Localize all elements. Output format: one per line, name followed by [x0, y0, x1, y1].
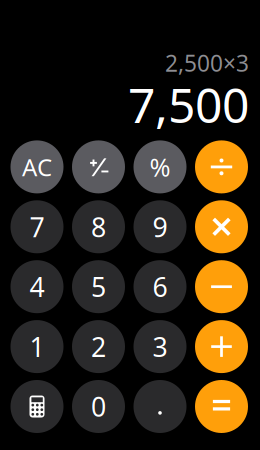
staticText: 5 — [91, 269, 106, 304]
staticText: 4 — [29, 269, 44, 304]
button[interactable]: Plus — [195, 320, 248, 373]
button[interactable]: Minus — [195, 260, 248, 313]
staticText: 8 — [91, 209, 106, 244]
button[interactable]: 3 — [133, 320, 186, 373]
button[interactable]: 1 — [10, 320, 63, 373]
button[interactable]: 8 — [72, 200, 125, 253]
staticText: 9 — [152, 209, 167, 244]
button[interactable]: 6 — [133, 260, 186, 313]
staticText: 7,500 — [128, 73, 249, 136]
staticText: 2,500×3 — [165, 48, 249, 78]
button[interactable]: % — [133, 140, 186, 193]
staticText: 0 — [91, 389, 106, 424]
staticText: 3 — [152, 329, 167, 364]
button[interactable]: 7 — [10, 200, 63, 253]
button[interactable]: Multiply — [195, 200, 248, 253]
staticText: AC — [22, 151, 52, 183]
button[interactable]: Divide — [195, 140, 248, 193]
button[interactable]: 0 — [72, 380, 125, 433]
button[interactable]: 5 — [72, 260, 125, 313]
staticText: 2 — [91, 329, 106, 364]
staticText: 1 — [29, 329, 44, 364]
button[interactable]: Decimal point — [133, 380, 186, 433]
button[interactable]: AC — [10, 140, 63, 193]
staticText: 7 — [29, 209, 44, 244]
button[interactable]: 4 — [10, 260, 63, 313]
staticText: 6 — [152, 269, 167, 304]
button[interactable]: Plus minus — [72, 140, 125, 193]
button[interactable]: 2 — [72, 320, 125, 373]
button[interactable]: 9 — [133, 200, 186, 253]
staticText: % — [149, 150, 170, 184]
button[interactable]: Equals — [195, 380, 248, 433]
button[interactable]: Calculator — [10, 380, 63, 433]
